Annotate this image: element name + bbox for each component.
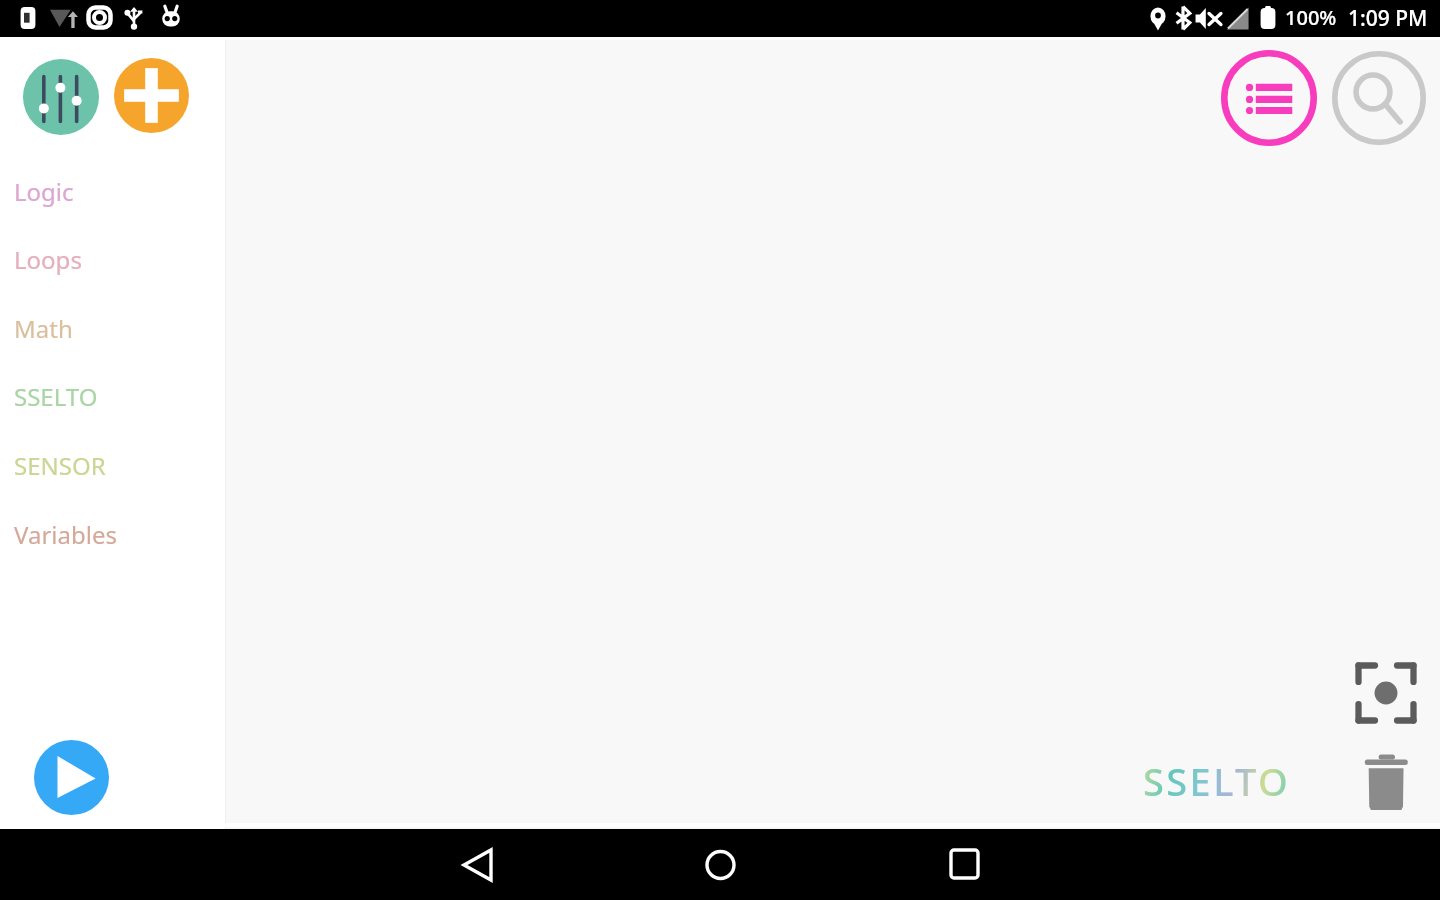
button[interactable]: Search xyxy=(1332,51,1426,145)
staticText: Logic xyxy=(14,175,74,208)
staticText: Math xyxy=(14,312,73,345)
staticText: 1:09 PM xyxy=(1348,4,1428,33)
staticText: Loops xyxy=(14,243,82,276)
staticText: SENSOR xyxy=(14,449,106,482)
button[interactable]: Recent apps xyxy=(920,829,1008,900)
button[interactable]: Logic xyxy=(0,175,226,243)
button[interactable]: Block list xyxy=(1221,50,1317,146)
staticText: SSELTO xyxy=(14,380,98,413)
button[interactable]: Settings xyxy=(23,59,99,135)
button[interactable]: Math xyxy=(0,312,226,380)
staticText: 100% xyxy=(1285,4,1337,31)
button[interactable]: Back xyxy=(434,829,522,900)
button[interactable]: Center view xyxy=(1355,662,1417,724)
button[interactable]: Home xyxy=(677,829,765,900)
button[interactable]: Variables xyxy=(0,518,226,586)
button[interactable]: Run program xyxy=(34,740,109,815)
button[interactable]: Delete blocks xyxy=(1360,752,1412,814)
staticText: SSELTO xyxy=(1143,755,1291,807)
button[interactable]: SENSOR xyxy=(0,449,226,517)
button[interactable]: Loops xyxy=(0,243,226,311)
staticText: Variables xyxy=(14,518,117,551)
button[interactable]: SSELTO xyxy=(0,380,226,448)
button[interactable]: Add block xyxy=(114,58,189,133)
